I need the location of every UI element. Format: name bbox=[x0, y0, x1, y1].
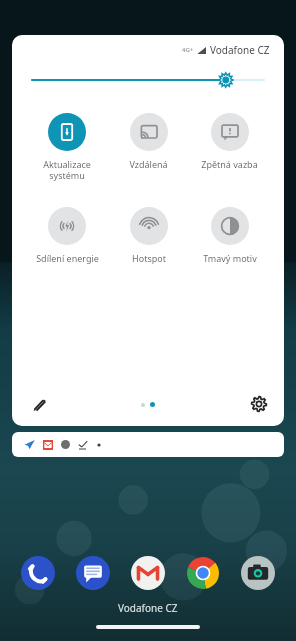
button[interactable]: Fotoaparát bbox=[240, 555, 276, 591]
button[interactable]: Chrome bbox=[185, 555, 221, 591]
button[interactable]: Zprávy bbox=[75, 555, 111, 591]
staticText: Hotspot bbox=[132, 252, 166, 264]
staticText: 4G+ bbox=[182, 46, 194, 54]
staticText: Aktualizace systému bbox=[43, 158, 91, 181]
staticText: Vzdálená bbox=[129, 158, 168, 170]
button[interactable]: Telefon bbox=[20, 555, 56, 591]
button[interactable] bbox=[32, 69, 264, 91]
button[interactable]: Zpětná vazba bbox=[189, 111, 270, 172]
button[interactable]: Tmavý motiv bbox=[189, 205, 270, 266]
staticText: Vodafone CZ bbox=[118, 601, 178, 615]
staticText: Tmavý motiv bbox=[203, 252, 257, 264]
button[interactable]: Vzdálená bbox=[108, 111, 189, 172]
button[interactable]: Sdílení energie bbox=[26, 205, 108, 266]
button[interactable] bbox=[12, 432, 284, 457]
button[interactable]: Nastavení bbox=[246, 391, 272, 417]
button[interactable]: Gmail bbox=[130, 555, 166, 591]
staticText: Sdílení energie bbox=[36, 252, 99, 264]
staticText: Zpětná vazba bbox=[201, 158, 258, 170]
button[interactable]: Upravit bbox=[26, 391, 52, 417]
button[interactable]: Aktualizace systému bbox=[26, 111, 108, 183]
staticText: Vodafone CZ bbox=[210, 43, 270, 57]
button[interactable]: Hotspot bbox=[108, 205, 189, 266]
